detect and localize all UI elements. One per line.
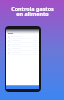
button[interactable]: [6, 47, 39, 50]
button[interactable]: [6, 39, 39, 42]
staticText: Controla gastos en alimento: [11, 5, 54, 18]
button[interactable]: Bottom navigation: [6, 85, 39, 89]
button[interactable]: [6, 51, 39, 54]
button[interactable]: [6, 43, 39, 46]
button[interactable]: [6, 35, 39, 38]
